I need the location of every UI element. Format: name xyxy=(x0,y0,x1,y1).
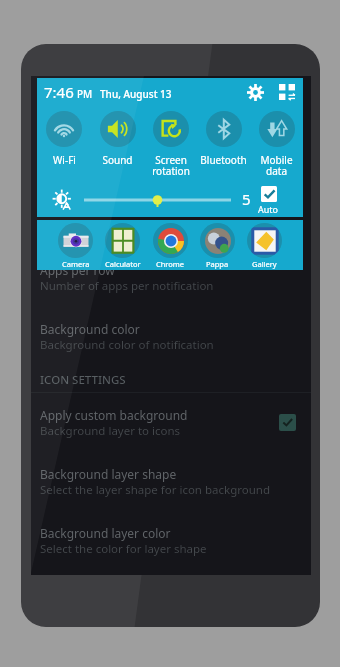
staticText: Background layer to icons xyxy=(40,423,181,439)
button[interactable]: Calculator xyxy=(99,220,146,270)
staticText: Background layer color xyxy=(40,525,171,541)
staticText: 5 xyxy=(242,189,251,209)
staticText: Screen rotation xyxy=(152,153,190,178)
staticText: 7:46 xyxy=(44,82,74,102)
staticText: Camera xyxy=(62,259,90,269)
button[interactable]: Background layer color xyxy=(31,511,311,570)
button[interactable]: Edit quick settings xyxy=(274,79,300,105)
staticText: Chrome xyxy=(156,259,185,269)
staticText: Bluetooth xyxy=(200,153,247,167)
button[interactable]: Pappa xyxy=(194,220,241,270)
staticText: Apply custom background xyxy=(40,407,188,423)
staticText: Auto xyxy=(258,203,279,215)
button[interactable]: Background color xyxy=(31,307,311,366)
button[interactable]: Background layer shape xyxy=(31,452,311,511)
button[interactable]: Bluetooth xyxy=(197,106,250,183)
button[interactable]: Apply custom background xyxy=(31,393,311,452)
staticText: Background color of notification xyxy=(40,337,214,353)
staticText: ICON SETTINGS xyxy=(40,372,126,388)
staticText: Thu, August 13 xyxy=(100,87,172,101)
button[interactable]: Gallery xyxy=(241,220,288,270)
button[interactable]: Screen rotation xyxy=(144,106,197,183)
staticText: Number of apps per notification xyxy=(40,278,214,294)
button[interactable]: Camera xyxy=(52,220,99,270)
staticText: Sound xyxy=(102,153,133,167)
staticText: Wi-Fi xyxy=(53,153,76,167)
staticText: Background color xyxy=(40,321,140,337)
staticText: Mobile data xyxy=(260,153,293,178)
staticText: Gallery xyxy=(252,259,277,269)
button[interactable]: Wi-Fi xyxy=(37,106,91,183)
button[interactable]: Chrome xyxy=(147,220,194,270)
staticText: PM xyxy=(77,87,93,101)
staticText: Background layer shape xyxy=(40,466,177,482)
staticText: Pappa xyxy=(206,259,229,269)
button[interactable]: Mobile data xyxy=(250,106,303,183)
button[interactable]: Settings xyxy=(242,79,268,105)
staticText: Apps per row xyxy=(40,262,115,278)
button[interactable]: Auto xyxy=(258,186,279,215)
staticText: Calculator xyxy=(105,259,141,269)
button[interactable]: Apps per row xyxy=(31,248,311,307)
staticText: Select the color for layer shape xyxy=(40,541,207,557)
staticText: Select the layer shape for icon backgrou… xyxy=(40,482,270,498)
button[interactable]: Sound xyxy=(91,106,144,183)
